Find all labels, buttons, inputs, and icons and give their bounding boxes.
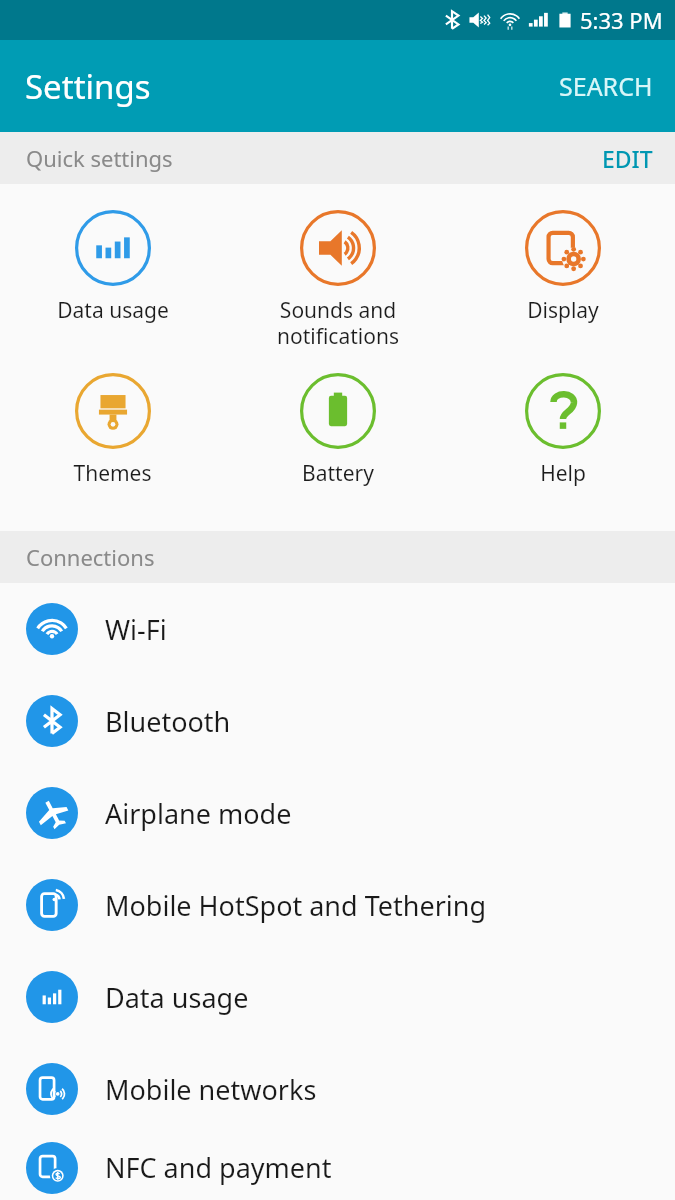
staticText: Data usage xyxy=(57,296,169,325)
button[interactable]: Sounds and notifications xyxy=(225,206,450,355)
staticText: Battery xyxy=(302,459,374,488)
button[interactable]: Battery xyxy=(225,369,450,492)
staticText: 5:33 PM xyxy=(580,5,663,35)
button[interactable]: Display xyxy=(450,206,675,329)
button[interactable]: Airplane mode xyxy=(0,767,675,859)
staticText: Bluetooth xyxy=(105,703,231,740)
staticText: Themes xyxy=(73,459,152,488)
button[interactable]: Data usage xyxy=(0,206,225,329)
staticText: EDIT xyxy=(602,143,653,174)
button[interactable]: Data usage xyxy=(0,951,675,1043)
staticText: Mobile networks xyxy=(105,1071,317,1108)
staticText: Airplane mode xyxy=(105,795,292,832)
staticText: Wi-Fi xyxy=(105,611,167,648)
button[interactable]: Themes xyxy=(0,369,225,492)
staticText: Display xyxy=(527,296,599,325)
button[interactable]: Mobile HotSpot and Tethering xyxy=(0,859,675,951)
staticText: Data usage xyxy=(105,979,249,1016)
staticText: Settings xyxy=(25,64,151,109)
staticText: Help xyxy=(540,459,586,488)
staticText: Connections xyxy=(26,542,155,572)
button[interactable]: Mobile networks xyxy=(0,1043,675,1135)
button[interactable]: Wi-Fi xyxy=(0,583,675,675)
staticText: SEARCH xyxy=(559,69,653,103)
staticText: NFC and payment xyxy=(105,1149,332,1186)
button[interactable]: Help xyxy=(450,369,675,492)
button[interactable]: EDIT xyxy=(580,133,675,184)
button[interactable]: SEARCH xyxy=(537,51,675,121)
staticText: Sounds and notifications xyxy=(277,296,399,351)
button[interactable]: NFC and payment xyxy=(0,1135,675,1200)
staticText: Quick settings xyxy=(26,143,173,173)
staticText: Mobile HotSpot and Tethering xyxy=(105,887,487,924)
button[interactable]: Bluetooth xyxy=(0,675,675,767)
